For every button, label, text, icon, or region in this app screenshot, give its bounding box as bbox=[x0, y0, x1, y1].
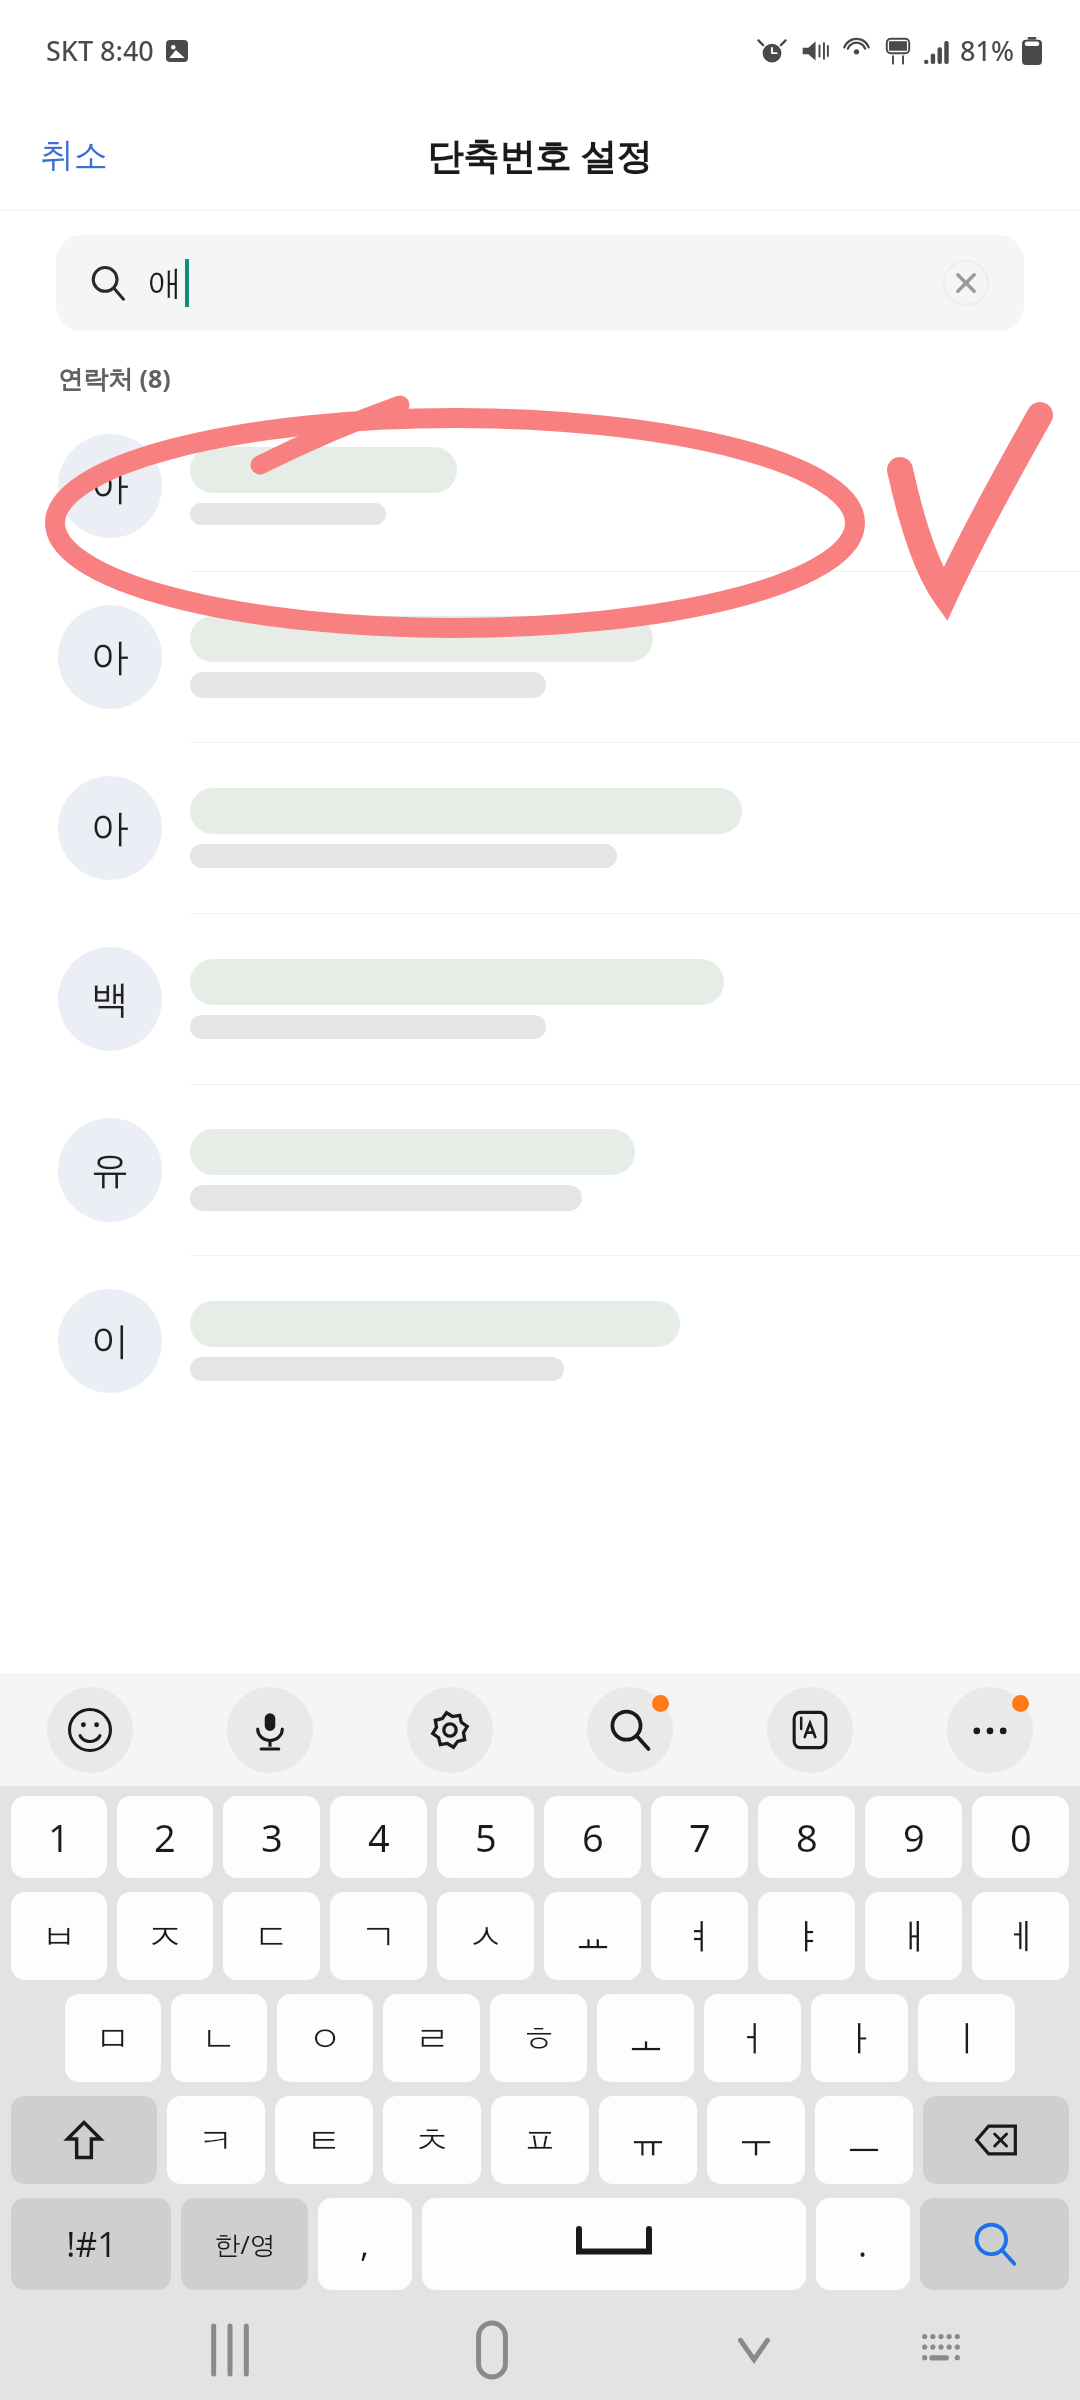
button[interactable]: !#1 bbox=[11, 2198, 171, 2290]
button[interactable]: 아 bbox=[0, 401, 1080, 571]
button[interactable]: ㄷ bbox=[223, 1892, 320, 1980]
button[interactable]: ㅌ bbox=[275, 2096, 373, 2184]
button[interactable]: 3 bbox=[223, 1796, 320, 1878]
button[interactable]: ㅐ bbox=[865, 1892, 962, 1980]
button[interactable]: ㅓ bbox=[704, 1994, 801, 2082]
staticText: ㄹ bbox=[414, 2016, 450, 2061]
staticText: ㅋ bbox=[198, 2118, 234, 2163]
button[interactable]: 4 bbox=[330, 1796, 427, 1878]
button[interactable]: 1 bbox=[11, 1796, 107, 1878]
staticText: ㅠ bbox=[630, 2118, 666, 2163]
staticText: 4 bbox=[368, 1811, 390, 1863]
button[interactable]: 9 bbox=[865, 1796, 962, 1878]
staticText: SKT 8:40 bbox=[46, 32, 154, 69]
button[interactable] bbox=[422, 2198, 806, 2290]
button[interactable]: 8 bbox=[758, 1796, 855, 1878]
button[interactable]: ㅍ bbox=[491, 2096, 589, 2184]
button[interactable]: Switch keyboard bbox=[893, 2302, 989, 2398]
staticText: 취소 bbox=[40, 134, 108, 177]
button[interactable]: ㄹ bbox=[383, 1994, 480, 2082]
staticText: ㅐ bbox=[896, 1914, 932, 1959]
staticText: ㅜ bbox=[738, 2118, 774, 2163]
staticText: , bbox=[360, 2221, 370, 2267]
button[interactable]: Hide keyboard bbox=[706, 2302, 802, 2398]
button[interactable]: ㅕ bbox=[651, 1892, 748, 1980]
staticText: ㅣ bbox=[949, 2016, 985, 2061]
button[interactable]: ㅗ bbox=[597, 1994, 694, 2082]
button[interactable]: 아 bbox=[0, 572, 1080, 742]
staticText: ㅡ bbox=[846, 2118, 882, 2163]
button[interactable]: Search bbox=[540, 1673, 720, 1786]
staticText: 6 bbox=[582, 1811, 604, 1863]
staticText: 81% bbox=[960, 32, 1014, 69]
button[interactable]: ㅋ bbox=[167, 2096, 265, 2184]
staticText: ㄷ bbox=[254, 1914, 290, 1959]
button[interactable]: More options bbox=[900, 1673, 1080, 1786]
button[interactable]: ㅈ bbox=[117, 1892, 213, 1980]
button[interactable]: ㅇ bbox=[277, 1994, 373, 2082]
button[interactable]: , bbox=[318, 2198, 412, 2290]
staticText: ㅍ bbox=[522, 2118, 558, 2163]
staticText: 이 bbox=[91, 1317, 129, 1365]
button[interactable]: ㅑ bbox=[758, 1892, 855, 1980]
staticText: 유 bbox=[91, 1146, 129, 1194]
button[interactable]: Shift bbox=[11, 2096, 157, 2184]
staticText: ㅏ bbox=[842, 2016, 878, 2061]
staticText: ㅊ bbox=[414, 2118, 450, 2163]
staticText: 0 bbox=[1010, 1811, 1032, 1863]
button[interactable]: 취소 bbox=[20, 124, 128, 187]
button[interactable]: Clear search bbox=[942, 259, 990, 307]
button[interactable]: ㅏ bbox=[811, 1994, 908, 2082]
button[interactable]: 이 bbox=[0, 1256, 1080, 1426]
staticText: ㅗ bbox=[628, 2016, 664, 2061]
button[interactable]: 6 bbox=[544, 1796, 641, 1878]
button[interactable]: 2 bbox=[117, 1796, 213, 1878]
button[interactable]: 백 bbox=[0, 914, 1080, 1084]
staticText: ㅌ bbox=[306, 2118, 342, 2163]
button[interactable]: ㄴ bbox=[171, 1994, 267, 2082]
button[interactable]: ㅔ bbox=[972, 1892, 1069, 1980]
staticText: 7 bbox=[689, 1811, 711, 1863]
button[interactable]: ㅜ bbox=[707, 2096, 805, 2184]
button[interactable]: ㅛ bbox=[544, 1892, 641, 1980]
staticText: 백 bbox=[91, 975, 129, 1023]
button[interactable]: 7 bbox=[651, 1796, 748, 1878]
staticText: !#1 bbox=[66, 2221, 117, 2267]
button[interactable]: ㅣ bbox=[918, 1994, 1015, 2082]
button[interactable]: ㅠ bbox=[599, 2096, 697, 2184]
button[interactable]: Recents bbox=[182, 2302, 278, 2398]
button[interactable]: Voice input bbox=[180, 1673, 360, 1786]
staticText: ㅅ bbox=[468, 1914, 504, 1959]
button[interactable]: Translate bbox=[720, 1673, 900, 1786]
staticText: ㅁ bbox=[95, 2016, 131, 2061]
staticText: 3 bbox=[261, 1811, 283, 1863]
button[interactable]: ㅡ bbox=[815, 2096, 913, 2184]
button[interactable]: ㄱ bbox=[330, 1892, 427, 1980]
button[interactable]: ㅁ bbox=[65, 1994, 161, 2082]
staticText: 1 bbox=[48, 1811, 70, 1863]
staticText: 9 bbox=[903, 1811, 925, 1863]
button[interactable]: Emoji bbox=[0, 1673, 180, 1786]
button[interactable]: Keyboard settings bbox=[360, 1673, 540, 1786]
staticText: 8 bbox=[796, 1811, 818, 1863]
button[interactable]: ㅅ bbox=[437, 1892, 534, 1980]
staticText: 2 bbox=[154, 1811, 176, 1863]
button[interactable]: ㅎ bbox=[490, 1994, 587, 2082]
button[interactable]: 애 bbox=[56, 235, 1024, 331]
staticText: 연락처 (8) bbox=[58, 361, 171, 395]
staticText: ㅛ bbox=[575, 1914, 611, 1959]
button[interactable]: . bbox=[816, 2198, 910, 2290]
staticText: ㅓ bbox=[735, 2016, 771, 2061]
staticText: 아 bbox=[91, 633, 129, 681]
button[interactable]: 한/영 bbox=[181, 2198, 308, 2290]
button[interactable]: ㅊ bbox=[383, 2096, 481, 2184]
button[interactable]: 아 bbox=[0, 743, 1080, 913]
button[interactable]: 유 bbox=[0, 1085, 1080, 1255]
button[interactable]: Backspace bbox=[923, 2096, 1069, 2184]
button[interactable]: 0 bbox=[972, 1796, 1069, 1878]
button[interactable]: 5 bbox=[437, 1796, 534, 1878]
staticText: ㅈ bbox=[147, 1914, 183, 1959]
button[interactable]: ㅂ bbox=[11, 1892, 107, 1980]
button[interactable]: Search bbox=[920, 2198, 1069, 2290]
button[interactable]: Home bbox=[444, 2302, 540, 2398]
